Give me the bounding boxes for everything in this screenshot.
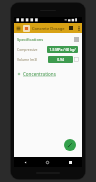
button[interactable]: More options (75, 23, 82, 33)
button[interactable]: Navigation menu (14, 23, 23, 33)
staticText: Compressive strength units (17, 47, 46, 52)
staticText: Specifications (17, 37, 74, 42)
staticText: Concentrations (23, 71, 56, 77)
button[interactable]: Home (36, 157, 59, 167)
button[interactable]: Back (14, 157, 36, 167)
button[interactable]: Edit volume (74, 57, 79, 62)
button[interactable]: Compressive strength units (17, 46, 79, 53)
button[interactable]: Recent apps (59, 157, 82, 167)
staticText: Volume (m3) (17, 57, 47, 62)
staticText: 0.94 (57, 57, 64, 62)
staticText: Concrete Dosage (32, 26, 66, 31)
button[interactable]: Calculate (64, 139, 76, 151)
button[interactable]: Save (66, 23, 75, 33)
button[interactable]: Volume (m3) (17, 56, 79, 63)
staticText: 1.5 MPa / 60 kg/cm2, 8 (47, 47, 78, 52)
button[interactable]: Concentrations (17, 70, 56, 78)
